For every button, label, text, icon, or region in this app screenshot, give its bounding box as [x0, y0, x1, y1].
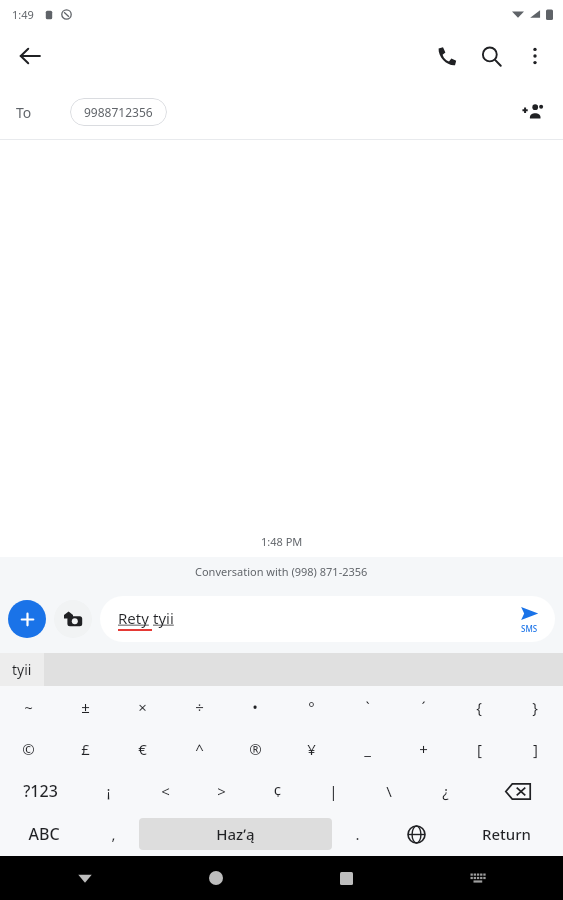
- button[interactable]: ^: [171, 728, 227, 770]
- staticText: Return: [482, 824, 531, 844]
- button[interactable]: Call: [425, 34, 469, 78]
- staticText: 9988712356: [84, 104, 153, 120]
- button[interactable]: ¿: [417, 770, 473, 812]
- staticText: ±: [81, 697, 90, 717]
- button[interactable]: [: [451, 728, 507, 770]
- staticText: Conversation with (998) 871-2356: [195, 564, 368, 579]
- button[interactable]: Change language: [383, 812, 449, 856]
- button[interactable]: ¥: [283, 728, 339, 770]
- staticText: SMS: [521, 623, 538, 634]
- button[interactable]: ?123: [0, 770, 80, 812]
- staticText: ¥: [307, 739, 316, 759]
- button[interactable]: Switch keyboard: [412, 856, 543, 900]
- staticText: |: [329, 781, 338, 801]
- button[interactable]: ®: [227, 728, 283, 770]
- button[interactable]: ×: [114, 686, 171, 728]
- staticText: >: [217, 781, 226, 801]
- button[interactable]: <: [137, 770, 193, 812]
- staticText: [: [477, 739, 482, 759]
- button[interactable]: |: [305, 770, 361, 812]
- button[interactable]: Send SMS: [518, 602, 541, 636]
- button[interactable]: Add people: [511, 90, 555, 134]
- button[interactable]: _: [339, 728, 395, 770]
- staticText: °: [308, 697, 315, 717]
- button[interactable]: ABC: [0, 812, 88, 856]
- staticText: ?123: [23, 780, 58, 802]
- staticText: .: [355, 824, 360, 844]
- button[interactable]: >: [193, 770, 249, 812]
- button[interactable]: Camera: [54, 600, 92, 638]
- button[interactable]: `: [339, 686, 395, 728]
- button[interactable]: Home: [150, 856, 281, 900]
- button[interactable]: {: [451, 686, 507, 728]
- staticText: }: [532, 697, 538, 717]
- button[interactable]: ~: [0, 686, 57, 728]
- staticText: _: [364, 739, 371, 759]
- staticText: ×: [138, 697, 147, 717]
- staticText: Rety: [118, 608, 149, 628]
- button[interactable]: €: [114, 728, 171, 770]
- staticText: To: [16, 103, 32, 122]
- staticText: tyii: [12, 660, 32, 679]
- button[interactable]: ±: [57, 686, 114, 728]
- staticText: £: [81, 739, 90, 759]
- staticText: ^: [195, 739, 204, 759]
- staticText: ¿: [442, 781, 449, 801]
- button[interactable]: Recents: [281, 856, 412, 900]
- staticText: ]: [533, 739, 538, 759]
- button[interactable]: tyii: [0, 653, 44, 686]
- button[interactable]: More options: [513, 34, 557, 78]
- staticText: ©: [22, 739, 35, 759]
- staticText: +: [419, 739, 428, 759]
- button[interactable]: +: [395, 728, 451, 770]
- staticText: •: [252, 697, 258, 717]
- staticText: ,: [111, 824, 116, 844]
- staticText: ´: [421, 697, 426, 717]
- button[interactable]: ÷: [171, 686, 227, 728]
- staticText: ~: [24, 697, 33, 717]
- staticText: \: [386, 781, 392, 801]
- staticText: Hazʼą: [216, 824, 255, 844]
- staticText: {: [476, 697, 482, 717]
- staticText: ABC: [28, 823, 60, 845]
- staticText: `: [365, 697, 370, 717]
- button[interactable]: Back: [8, 34, 52, 78]
- button[interactable]: £: [57, 728, 114, 770]
- button[interactable]: ¢: [249, 770, 305, 812]
- staticText: 1:48 PM: [261, 534, 303, 549]
- button[interactable]: Backspace: [473, 770, 563, 812]
- button[interactable]: \: [361, 770, 417, 812]
- button[interactable]: 9988712356: [70, 98, 167, 126]
- button[interactable]: ]: [507, 728, 563, 770]
- staticText: ®: [249, 739, 262, 759]
- button[interactable]: }: [507, 686, 563, 728]
- button[interactable]: .: [332, 812, 383, 856]
- button[interactable]: Return: [449, 812, 563, 856]
- staticText: ¡: [106, 781, 111, 801]
- staticText: ÷: [195, 697, 204, 717]
- button[interactable]: ´: [395, 686, 451, 728]
- button[interactable]: Rety: [100, 596, 555, 642]
- button[interactable]: Hazʼą: [139, 818, 332, 850]
- button[interactable]: Hide keyboard: [20, 856, 150, 900]
- button[interactable]: Search: [469, 34, 513, 78]
- staticText: ¢: [273, 781, 282, 801]
- staticText: tyii: [153, 608, 174, 628]
- button[interactable]: ,: [88, 812, 139, 856]
- staticText: 1:49: [12, 7, 34, 22]
- button[interactable]: ¡: [80, 770, 137, 812]
- button[interactable]: ©: [0, 728, 57, 770]
- staticText: €: [138, 739, 147, 759]
- button[interactable]: °: [283, 686, 339, 728]
- button[interactable]: •: [227, 686, 283, 728]
- staticText: <: [161, 781, 170, 801]
- button[interactable]: Add attachment: [8, 600, 46, 638]
